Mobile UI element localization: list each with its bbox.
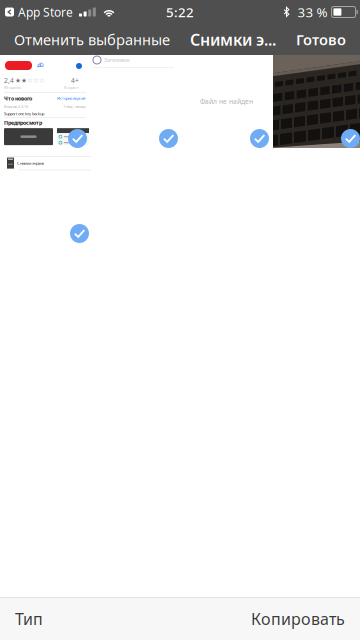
button[interactable]: Тип — [0, 598, 58, 640]
staticText: 89 оценок — [4, 85, 21, 90]
button[interactable]: Назад в App Store — [0, 0, 73, 24]
staticText: История версий — [57, 96, 85, 101]
button[interactable]: Копировать — [236, 598, 360, 640]
staticText: Снимки э... — [190, 29, 276, 50]
staticText: App Store — [18, 4, 73, 20]
staticText: 33 % — [298, 3, 328, 21]
button[interactable]: Фотография клавиатуры — [273, 55, 360, 148]
staticText: 4+ — [71, 76, 79, 85]
staticText: Заголовок — [104, 56, 130, 64]
staticText: Файл не найден — [200, 97, 253, 106]
button[interactable]: Готово — [282, 24, 360, 55]
button[interactable]: Отменить выбранные — [0, 24, 184, 55]
staticText: 5:22 — [166, 3, 194, 21]
staticText: 1 нед. назад — [63, 104, 85, 109]
button[interactable]: Снимок экрана App Store — [0, 55, 89, 148]
staticText: Копировать — [251, 608, 345, 629]
staticText: Что нового — [4, 95, 32, 102]
staticText: Support one key backup — [4, 111, 44, 116]
staticText: Тип — [15, 608, 43, 629]
staticText: Версия 2.3.13 — [4, 104, 28, 109]
staticText: ★★ — [15, 77, 27, 84]
button[interactable]: Файл не найден — [182, 55, 271, 148]
staticText: Отменить выбранные — [14, 30, 170, 49]
staticText: Возраст — [64, 85, 79, 90]
staticText: ☆☆☆ — [27, 77, 45, 84]
staticText: 2,4 — [4, 76, 14, 85]
button[interactable]: Снимок экрана — [2, 150, 91, 243]
button[interactable]: Снимок экрана — [91, 55, 180, 148]
staticText: Предпросмотр — [4, 119, 42, 126]
staticText: Готово — [296, 30, 346, 49]
staticText: Снимки экрана — [17, 160, 44, 166]
